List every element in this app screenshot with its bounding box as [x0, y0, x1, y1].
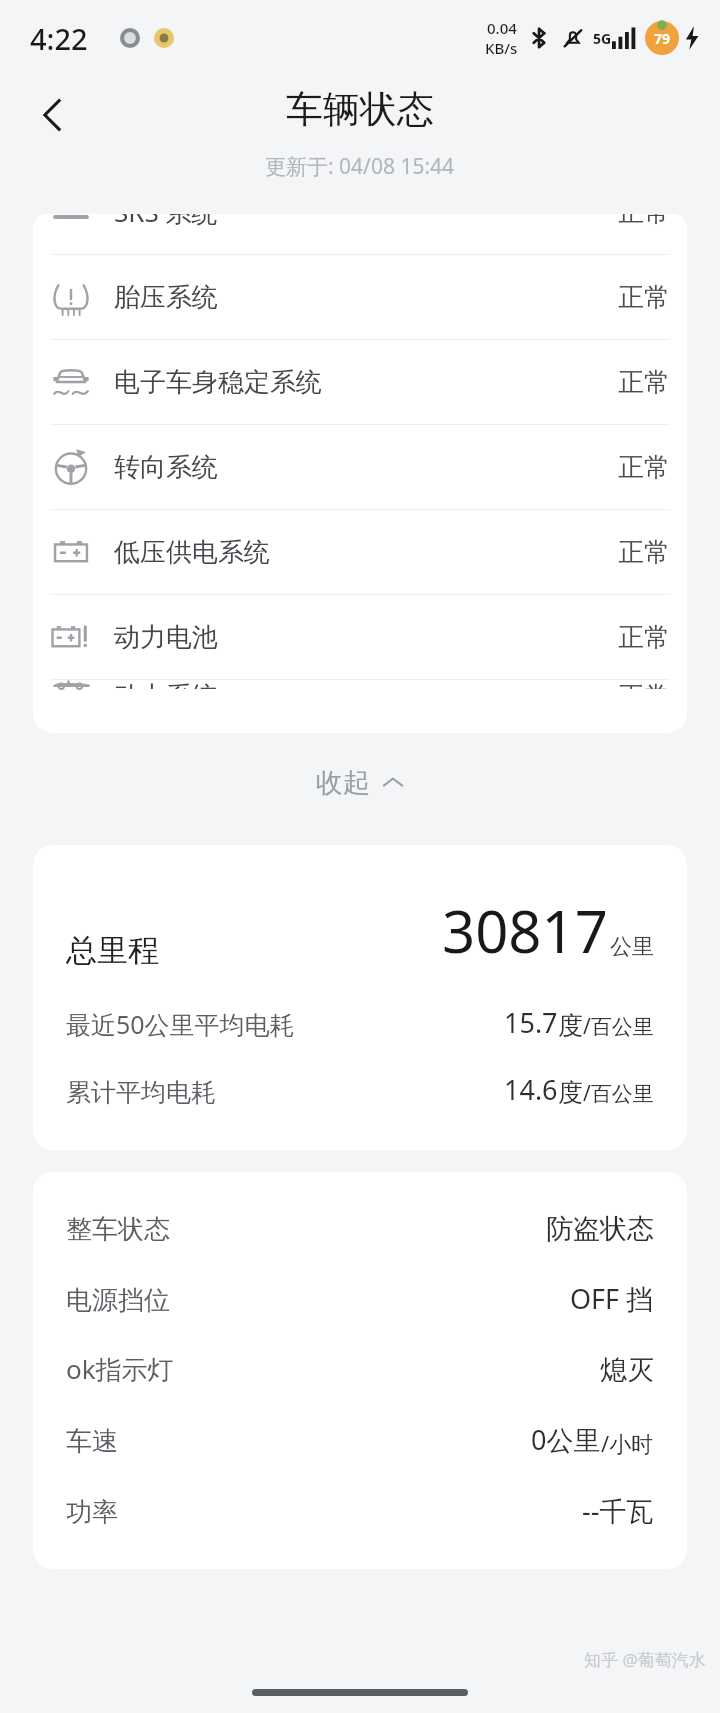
staticText: OFF 挡	[570, 1280, 654, 1317]
staticText: 公里	[610, 933, 654, 961]
staticText: /小时	[601, 1428, 654, 1458]
staticText: 79	[654, 29, 671, 48]
button[interactable]: 动力系统	[33, 680, 687, 689]
staticText: SRS 系统	[114, 214, 218, 230]
staticText: 整车状态	[66, 1213, 170, 1246]
staticText: 累计平均电耗	[66, 1077, 216, 1108]
staticText: 更新于: 04/08 15:44	[265, 152, 455, 181]
staticText: 正常	[618, 366, 670, 399]
staticText: 收起	[316, 766, 370, 800]
staticText: 胎压系统	[114, 281, 218, 314]
staticText: KB/s	[485, 38, 518, 58]
staticText: 低压供电系统	[114, 536, 270, 569]
staticText: ok指示灯	[66, 1351, 174, 1387]
staticText: 知乎 @葡萄汽水	[584, 1648, 706, 1671]
staticText: 电源挡位	[66, 1284, 170, 1317]
staticText: 最近50公里平均电耗	[66, 1007, 295, 1041]
staticText: 防盗状态	[546, 1212, 654, 1246]
button[interactable]: 电子车身稳定系统	[33, 340, 687, 425]
staticText: 车辆状态	[286, 86, 434, 133]
staticText: --千瓦	[582, 1492, 654, 1529]
staticText: 正常	[618, 451, 670, 484]
staticText: 熄灭	[600, 1353, 654, 1387]
staticText: 功率	[66, 1496, 118, 1529]
staticText: 正常	[618, 214, 670, 229]
button[interactable]: Back	[18, 80, 88, 150]
button[interactable]: SRS 系统	[33, 214, 687, 255]
button[interactable]: 收起	[0, 733, 720, 833]
staticText: 正常	[618, 621, 670, 654]
staticText: /百公里	[583, 1012, 654, 1041]
staticText: /百公里	[583, 1079, 654, 1108]
staticText: 度	[558, 1077, 583, 1108]
staticText: 总里程	[66, 931, 159, 970]
staticText: 0公里	[531, 1421, 601, 1458]
staticText: 0.04	[487, 18, 517, 38]
staticText: 30817	[442, 891, 608, 970]
staticText: 正常	[618, 680, 670, 689]
staticText: 车速	[66, 1425, 118, 1458]
staticText: 正常	[618, 281, 670, 314]
staticText: 5G	[593, 29, 612, 48]
staticText: 4:22	[30, 19, 88, 58]
button[interactable]: 胎压系统	[33, 255, 687, 340]
staticText: 度	[558, 1010, 583, 1041]
staticText: 动力系统	[114, 680, 218, 689]
staticText: 14.6	[504, 1071, 558, 1108]
staticText: 15.7	[504, 1004, 558, 1041]
staticText: 正常	[618, 536, 670, 569]
button[interactable]: 转向系统	[33, 425, 687, 510]
button[interactable]: 低压供电系统	[33, 510, 687, 595]
staticText: 转向系统	[114, 451, 218, 484]
button[interactable]: 动力电池	[33, 595, 687, 680]
staticText: 电子车身稳定系统	[114, 366, 322, 399]
staticText: 动力电池	[114, 621, 218, 654]
